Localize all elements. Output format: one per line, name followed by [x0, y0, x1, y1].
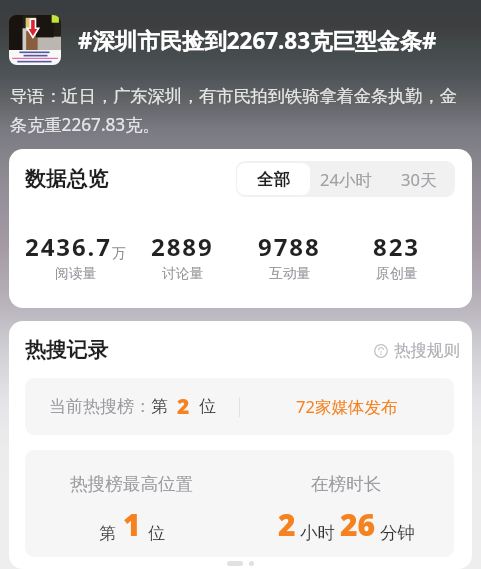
button[interactable]: 全部	[237, 163, 310, 195]
button[interactable]: 话题配图	[9, 15, 61, 65]
staticText: 第	[99, 523, 116, 544]
staticText: 位	[148, 523, 165, 544]
staticText: 导语：近日，广东深圳，有市民拍到铁骑拿着金条执勤，金条克重2267.83克。	[10, 85, 473, 136]
staticText: 万	[112, 245, 126, 263]
staticText: 26	[340, 504, 376, 545]
staticText: 热搜规则	[394, 340, 460, 361]
staticText: 2889	[151, 230, 214, 263]
staticText: 原创量	[376, 265, 418, 282]
staticText: 热搜记录	[25, 337, 109, 363]
staticText: 小时	[300, 522, 335, 544]
staticText: 72家媒体发布	[296, 395, 398, 418]
staticText: 823	[373, 230, 420, 263]
staticText: 数据总览	[25, 166, 109, 192]
staticText: 2	[177, 392, 190, 421]
staticText: #深圳市民捡到2267.83克巨型金条#	[78, 25, 469, 56]
button[interactable]: 热搜规则	[374, 338, 460, 363]
staticText: 2436.7	[25, 230, 112, 263]
staticText: 热搜榜最高位置	[70, 473, 194, 495]
staticText: 位	[199, 396, 216, 417]
staticText: 24小时	[320, 168, 372, 191]
staticText: 在榜时长	[311, 473, 382, 495]
staticText: 当前热搜榜：	[49, 396, 151, 417]
staticText: 阅读量	[55, 265, 97, 282]
button[interactable]: 30天	[386, 163, 454, 195]
staticText: 分钟	[380, 522, 415, 544]
staticText: 9788	[258, 230, 321, 263]
staticText: 全部	[257, 169, 290, 190]
staticText: 30天	[401, 168, 437, 191]
staticText: 2	[278, 504, 296, 545]
button[interactable]: 24小时	[310, 163, 386, 195]
staticText: 1	[123, 504, 141, 545]
staticText: 互动量	[269, 265, 311, 282]
staticText: 讨论量	[162, 265, 204, 282]
staticText: 第	[151, 396, 168, 417]
